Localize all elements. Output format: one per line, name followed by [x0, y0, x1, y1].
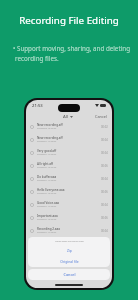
button[interactable]: Hello Everyone.aaa [26, 185, 112, 198]
staticText: 20230601 17:48:02 [37, 179, 57, 182]
staticText: 00:06 [101, 164, 108, 168]
staticText: All [63, 114, 69, 120]
button[interactable]: Good Voice.aaa [26, 198, 112, 211]
staticText: Please select the type of share [55, 240, 84, 243]
staticText: 20230601 17:48:02 [37, 231, 57, 234]
staticText: 20230601 17:48:02 [37, 140, 57, 143]
staticText: Good Voice.aaa [37, 201, 60, 205]
button[interactable]: All [63, 114, 73, 120]
button[interactable]: Do buffer.aaa [26, 172, 112, 185]
staticText: 20230606 18:23:53 [37, 127, 57, 130]
button[interactable]: Very good.aff [26, 146, 112, 159]
staticText: Do buffer.aaa [37, 175, 57, 179]
staticText: Important.aaa [37, 214, 58, 218]
staticText: New recording.aff [37, 123, 63, 127]
staticText: 00:04 [101, 203, 108, 207]
button[interactable]: Zip [28, 245, 110, 256]
button[interactable]: Cancel [28, 269, 110, 280]
staticText: 00:06 [101, 190, 108, 194]
staticText: 00:04 [101, 229, 108, 233]
staticText: 20230601 17:48:02 [37, 205, 57, 208]
staticText: 20230531 19:44:28 [37, 166, 57, 169]
button[interactable]: Recording 2.aaa [26, 224, 112, 237]
button[interactable]: Important.aaa [26, 211, 112, 224]
button[interactable]: Cancel [95, 114, 107, 119]
button[interactable]: Original file [28, 256, 110, 267]
staticText: Recording 2.aaa [37, 227, 61, 231]
staticText: Recording File Editing [0, 14, 138, 27]
staticText: New recording.aff [37, 136, 63, 140]
staticText: 00:02 [101, 125, 108, 129]
staticText: 20230531 19:44:28 [37, 192, 57, 195]
staticText: Zip [67, 248, 72, 253]
staticText: Hello Everyone.aaa [37, 188, 65, 192]
staticText: 00:04 [101, 177, 108, 181]
staticText: 20230601 17:48:02 [37, 153, 57, 156]
button[interactable]: New recording.aff [26, 120, 112, 133]
button[interactable]: All right.aff [26, 159, 112, 172]
button[interactable]: New recording.aff [26, 133, 112, 146]
staticText: Very good.aff [37, 149, 57, 153]
staticText: 20230531 19:44:28 [37, 218, 57, 221]
staticText: • Support moving, sharing, and deleting [13, 44, 130, 53]
staticText: Original file [60, 259, 79, 264]
staticText: Cancel [63, 272, 76, 277]
staticText: 00:04 [101, 151, 108, 155]
staticText: All right.aff [37, 162, 54, 166]
staticText: 21:53 [32, 103, 43, 109]
staticText: 00:04 [101, 138, 108, 142]
staticText: recording files. [15, 54, 59, 63]
staticText: 00:06 [101, 216, 108, 220]
